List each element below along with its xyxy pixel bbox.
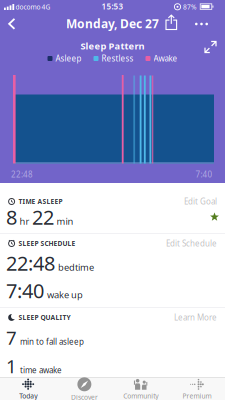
- staticText: 7: [6, 325, 17, 350]
- staticText: Premium: [182, 391, 211, 400]
- staticText: Edit Goal: [184, 196, 217, 207]
- staticText: Asleep: [55, 53, 81, 64]
- button[interactable]: Edit Schedule: [166, 238, 217, 249]
- staticText: time awake: [20, 365, 62, 375]
- staticText: 22:48: [6, 250, 55, 276]
- staticText: Today: [19, 392, 37, 400]
- staticText: min to fall asleep: [20, 336, 84, 347]
- staticText: Discover: [71, 393, 98, 400]
- button[interactable]: Share: [161, 12, 181, 32]
- staticText: 7:40: [6, 277, 44, 304]
- button[interactable]: Learn More: [174, 312, 217, 323]
- staticText: min: [56, 215, 73, 227]
- staticText: docomo: [15, 2, 40, 11]
- staticText: TIME ASLEEP: [18, 197, 62, 206]
- staticText: 8: [6, 204, 17, 230]
- button[interactable]: Back: [3, 15, 21, 33]
- staticText: 7:40: [195, 169, 212, 180]
- staticText: 22: [32, 204, 54, 230]
- staticText: 87%: [183, 2, 197, 11]
- button[interactable]: Community: [112, 378, 169, 400]
- staticText: Awake: [153, 53, 177, 64]
- staticText: Learn More: [174, 312, 217, 323]
- button[interactable]: Edit Goal: [184, 196, 217, 207]
- staticText: 1: [6, 354, 17, 378]
- staticText: Restless: [101, 53, 133, 64]
- staticText: 15:53: [101, 1, 123, 12]
- button[interactable]: Today: [0, 378, 56, 400]
- staticText: Edit Schedule: [166, 238, 217, 249]
- button[interactable]: Premium: [169, 378, 225, 400]
- staticText: wake up: [47, 288, 83, 301]
- button[interactable]: Discover: [56, 378, 112, 400]
- staticText: hr: [19, 215, 29, 227]
- button[interactable]: Expand chart: [202, 38, 219, 55]
- staticText: SLEEP QUALITY: [18, 313, 70, 322]
- staticText: Monday, Dec 27: [66, 15, 159, 31]
- staticText: 22:48: [11, 169, 33, 180]
- staticText: 4G: [41, 2, 50, 11]
- staticText: Sleep Pattern: [80, 40, 144, 52]
- staticText: Community: [123, 391, 158, 400]
- staticText: bedtime: [58, 261, 94, 273]
- staticText: SLEEP SCHEDULE: [18, 239, 75, 248]
- button[interactable]: More: [191, 18, 211, 30]
